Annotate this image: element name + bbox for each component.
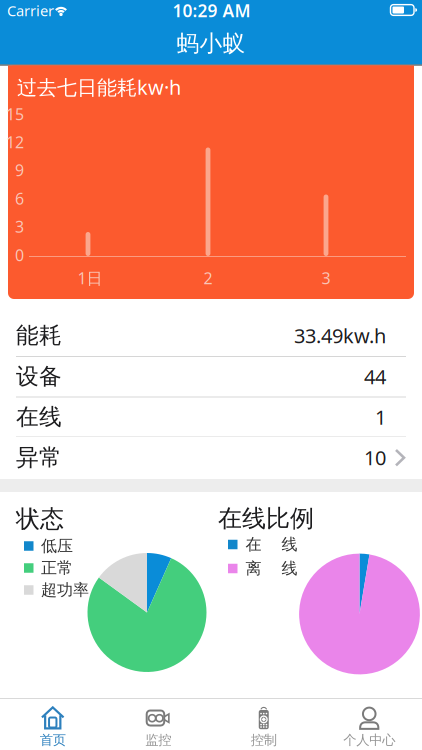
button[interactable]: 监控 <box>105 698 211 750</box>
staticText: 33.49kw.h <box>294 322 386 349</box>
staticText: 离 <box>245 559 261 578</box>
staticText: 能耗 <box>16 322 62 349</box>
staticText: 个人中心 <box>343 732 395 748</box>
staticText: 首页 <box>40 732 66 748</box>
staticText: 3 <box>321 267 330 289</box>
staticText: 监控 <box>145 732 171 748</box>
staticText: 超功率 <box>41 580 89 600</box>
staticText: 15 <box>6 103 24 125</box>
staticText: 在 <box>245 535 261 554</box>
staticText: 44 <box>364 363 386 390</box>
staticText: 2 <box>203 267 212 289</box>
button[interactable]: 控制 <box>211 698 316 750</box>
staticText: 1 <box>375 404 386 430</box>
staticText: 10:29 AM <box>172 0 250 22</box>
staticText: 10 <box>364 444 386 471</box>
staticText: 蚂小蚁 <box>176 30 245 57</box>
staticText: 在线比例 <box>218 504 314 533</box>
staticText: 1日 <box>77 267 102 289</box>
button[interactable]: 个人中心 <box>316 698 422 750</box>
staticText: 9 <box>15 159 24 181</box>
staticText: 6 <box>15 188 24 209</box>
staticText: 状态 <box>16 504 64 534</box>
staticText: Carrier <box>7 1 54 20</box>
button[interactable]: 异常 <box>0 437 422 478</box>
staticText: 在线 <box>16 403 62 431</box>
staticText: 正常 <box>41 558 73 578</box>
staticText: 低压 <box>41 536 73 556</box>
button[interactable]: 首页 <box>0 698 105 750</box>
staticText: 12 <box>6 131 24 153</box>
staticText: 过去七日能耗kw·h <box>17 74 181 100</box>
staticText: 0 <box>15 244 24 266</box>
staticText: 线 <box>281 559 297 578</box>
staticText: 控制 <box>251 732 277 748</box>
staticText: 3 <box>15 216 24 237</box>
staticText: 线 <box>281 535 297 554</box>
staticText: 异常 <box>16 444 62 471</box>
staticText: 设备 <box>16 363 62 390</box>
